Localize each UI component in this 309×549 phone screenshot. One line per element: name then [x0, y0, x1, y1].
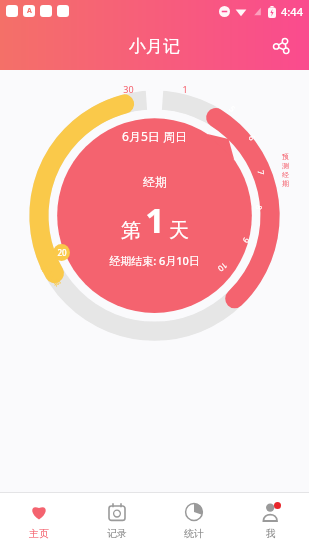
- button[interactable]: Share: [261, 26, 301, 66]
- staticText: 记录: [107, 527, 127, 540]
- button[interactable]: 我: [232, 493, 309, 549]
- staticText: 经期: [143, 174, 167, 189]
- button[interactable]: 主页: [0, 493, 78, 549]
- staticText: 测: [282, 161, 289, 170]
- staticText: 第: [121, 218, 141, 243]
- staticText: 排: [39, 263, 50, 274]
- staticText: 我: [266, 527, 276, 540]
- staticText: 8: [254, 204, 265, 211]
- button[interactable]: 统计: [155, 493, 232, 549]
- staticText: 经: [282, 170, 289, 179]
- staticText: 7: [256, 169, 267, 175]
- staticText: 期: [51, 276, 62, 288]
- staticText: 天: [169, 218, 189, 243]
- staticText: 6: [246, 133, 259, 142]
- staticText: 10: [216, 260, 230, 275]
- staticText: 1: [145, 197, 165, 243]
- button[interactable]: Cycle dial: [0, 70, 309, 492]
- staticText: 20: [57, 247, 67, 258]
- staticText: 小月记: [129, 36, 180, 57]
- staticText: 6月5日 周日: [122, 128, 187, 144]
- staticText: 主页: [29, 527, 49, 540]
- staticText: 统计: [184, 527, 204, 540]
- staticText: 卵: [45, 270, 56, 281]
- staticText: 期: [282, 179, 289, 188]
- staticText: 9: [240, 235, 252, 246]
- staticText: 30: [123, 83, 134, 95]
- staticText: 预: [282, 152, 289, 161]
- button[interactable]: 记录: [78, 493, 155, 549]
- staticText: A: [27, 6, 32, 16]
- staticText: 经期结束: 6月10日: [109, 253, 200, 268]
- staticText: 4:44: [281, 4, 303, 19]
- staticText: 1: [182, 83, 188, 95]
